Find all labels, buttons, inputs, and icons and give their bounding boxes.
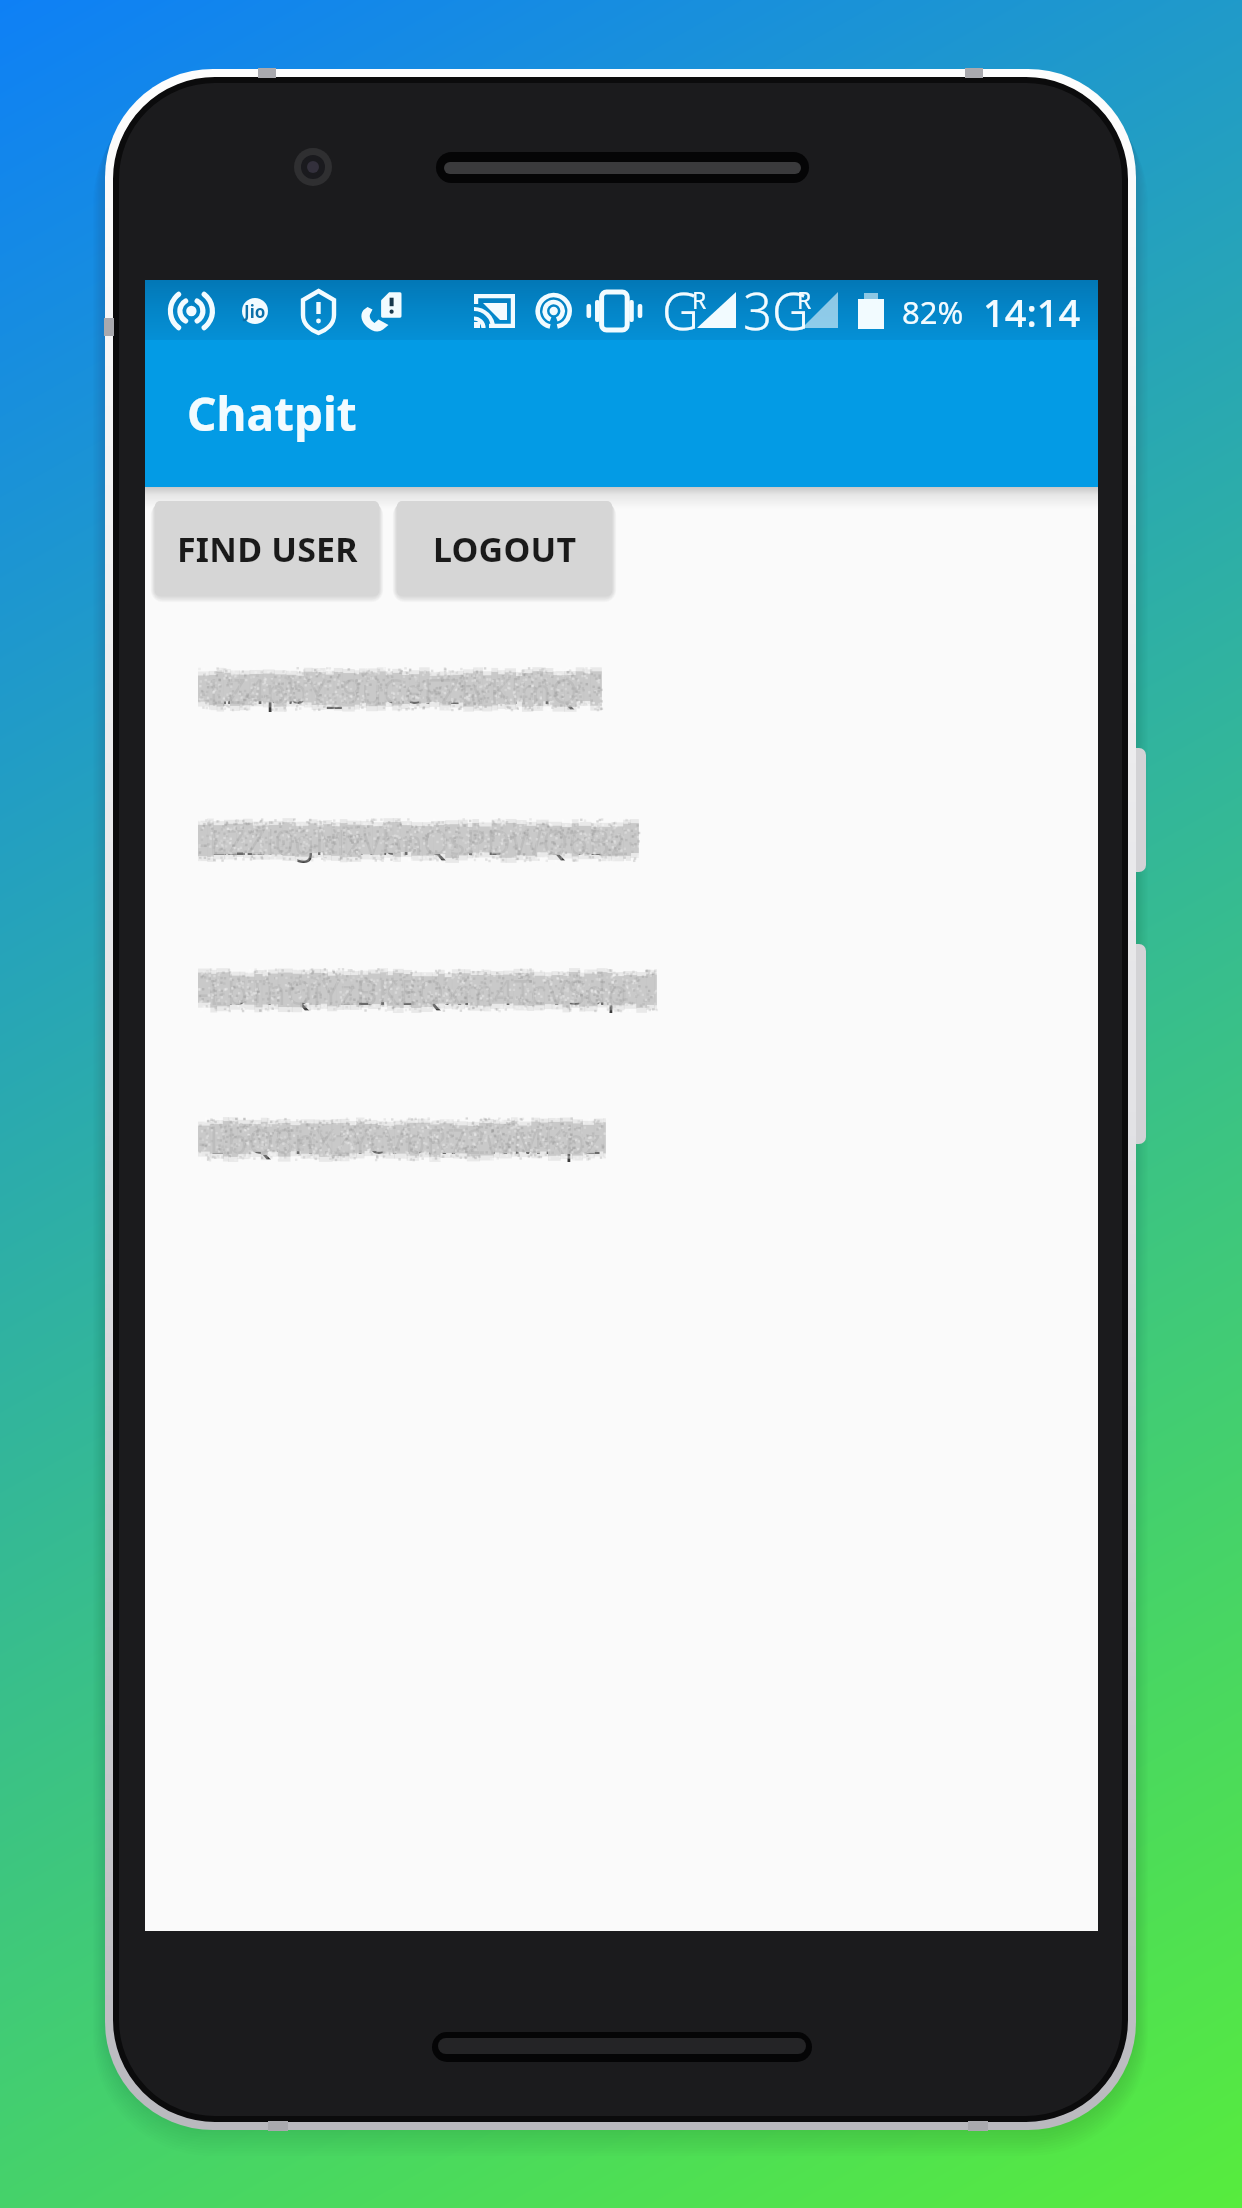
- button[interactable]: FIND USER: [155, 501, 379, 596]
- staticText: -LZZl0gMxvbnQsPDWQ6Bz9: [198, 819, 638, 865]
- staticText: Jio: [244, 300, 266, 323]
- button[interactable]: LOGOUT: [397, 501, 612, 596]
- button[interactable]: -LbQ8nXzYcVbR72wMKpz: [198, 1114, 605, 1166]
- staticText: 3G: [743, 275, 810, 335]
- staticText: FIND USER: [177, 526, 358, 572]
- staticText: 82%: [902, 291, 964, 333]
- staticText: -LbQ8nXzYcVbR72wMKpz: [198, 1118, 601, 1164]
- staticText: LOGOUT: [433, 526, 577, 572]
- staticText: -LZ4pbY_9uCeFZtvKlmQ: [198, 668, 578, 714]
- staticText: R: [692, 284, 707, 315]
- staticText: R: [797, 284, 812, 315]
- button[interactable]: Chatpit: [145, 340, 1098, 487]
- button[interactable]: -LZ4pbY_9uCeFZtvKlmQ: [198, 664, 601, 716]
- staticText: -LbTnQiYzBKEQxm4TcVSdp: [198, 969, 628, 1015]
- button[interactable]: -LZZl0gMxvbnQsPDWQ6Bz9: [198, 815, 638, 867]
- staticText: Chatpit: [187, 382, 357, 445]
- staticText: G: [662, 275, 699, 335]
- staticText: 14:14: [983, 286, 1081, 338]
- button[interactable]: -LbTnQiYzBKEQxm4TcVSdp: [198, 965, 656, 1017]
